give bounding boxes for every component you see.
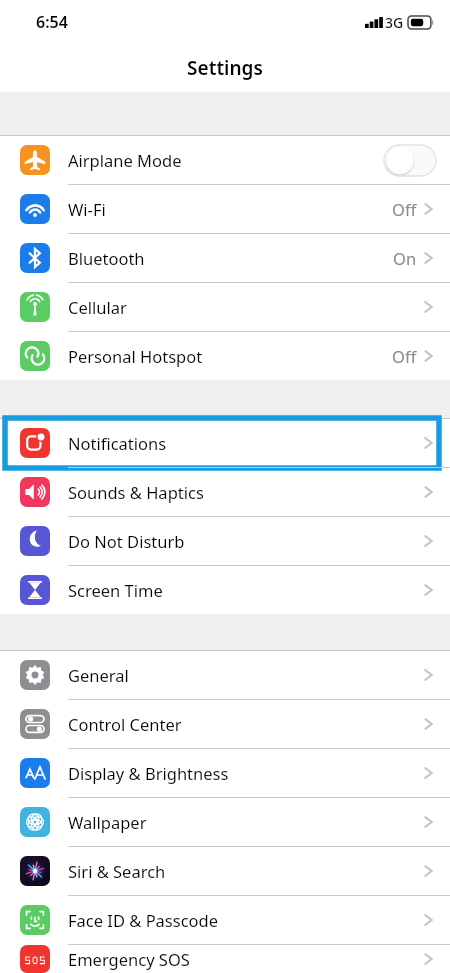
staticText: Control Center [68,713,424,735]
staticText: Wi-Fi [68,198,392,220]
button[interactable]: Cellular [0,283,450,331]
staticText: Sounds & Haptics [68,481,424,503]
staticText: Do Not Disturb [68,530,424,552]
staticText: 6:54 [36,11,68,33]
button[interactable]: Airplane Mode [0,136,450,184]
button[interactable]: Control Center [0,700,450,748]
staticText: Face ID & Passcode [68,909,424,931]
button[interactable]: Wallpaper [0,798,450,846]
staticText: Settings [187,55,263,81]
button[interactable]: Wi-Fi [0,185,450,233]
button[interactable]: Display & Brightness [0,749,450,797]
staticText: Emergency SOS [68,948,424,970]
button[interactable]: Face ID & Passcode [0,896,450,944]
staticText: Off [392,345,417,367]
button[interactable]: Sounds & Haptics [0,468,450,516]
staticText: General [68,664,424,686]
button[interactable]: General [0,651,450,699]
staticText: Wallpaper [68,811,424,833]
staticText: Personal Hotspot [68,345,392,367]
staticText: 3G [385,13,404,32]
button[interactable]: Screen Time [0,566,450,614]
button[interactable]: Do Not Disturb [0,517,450,565]
button[interactable]: Personal Hotspot [0,332,450,380]
button[interactable]: Siri & Search [0,847,450,895]
staticText: Siri & Search [68,860,424,882]
staticText: On [393,247,417,269]
button[interactable]: Emergency SOS [0,945,450,973]
button[interactable]: Bluetooth [0,234,450,282]
staticText: Screen Time [68,579,424,601]
staticText: Cellular [68,296,424,318]
staticText: Airplane Mode [68,149,384,171]
staticText: Display & Brightness [68,762,424,784]
button[interactable]: Notifications [0,419,450,467]
staticText: Notifications [68,432,424,454]
staticText: Bluetooth [68,247,393,269]
staticText: Off [392,198,417,220]
